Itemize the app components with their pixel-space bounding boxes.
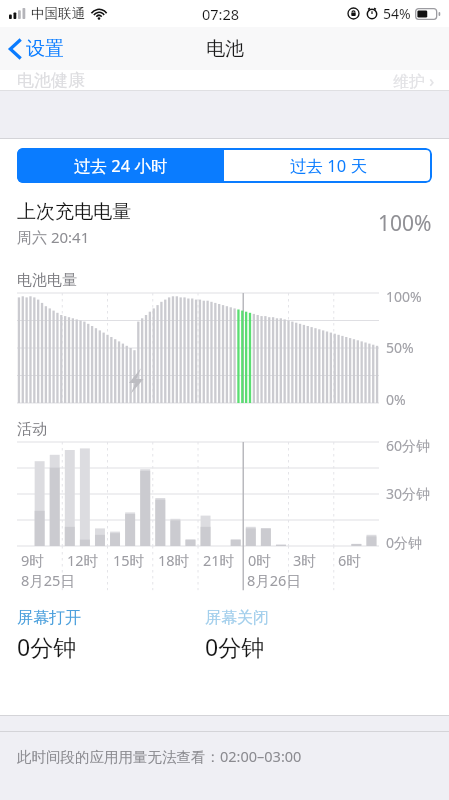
staticText: 0分钟	[17, 631, 77, 662]
staticText: 活动	[17, 420, 47, 439]
staticText: 此时间段的应用用量无法查看：02:00–03:00	[17, 746, 302, 766]
staticText: 屏幕关闭	[205, 608, 269, 628]
staticText: 60分钟	[386, 436, 431, 455]
staticText: 电池电量	[17, 271, 77, 290]
staticText: 18时	[158, 550, 190, 570]
staticText: 屏幕打开	[17, 608, 81, 628]
staticText: 中国联通	[31, 5, 85, 22]
staticText: 50%	[386, 338, 414, 357]
button[interactable]: 过去 24 小时	[17, 148, 224, 183]
staticText: 15时	[113, 550, 145, 570]
staticText: 100%	[378, 209, 432, 238]
staticText: 30分钟	[386, 484, 431, 503]
staticText: 过去 10 天	[290, 154, 367, 177]
staticText: 0%	[386, 390, 406, 409]
staticText: 设置	[26, 37, 64, 61]
staticText: 9时	[21, 550, 44, 570]
staticText: 21时	[203, 550, 235, 570]
staticText: 电池	[206, 37, 244, 61]
staticText: 0时	[248, 550, 271, 570]
staticText: 07:28	[202, 4, 240, 24]
staticText: 0分钟	[205, 631, 265, 662]
staticText: 维护 ›	[393, 70, 435, 90]
staticText: 3时	[293, 550, 316, 570]
staticText: 8月26日	[247, 570, 301, 590]
staticText: 过去 24 小时	[74, 154, 168, 177]
staticText: 电池健康	[17, 70, 85, 90]
staticText: 周六 20:41	[17, 227, 90, 247]
staticText: 6时	[338, 550, 361, 570]
staticText: 0分钟	[386, 533, 423, 552]
staticText: 8月25日	[21, 570, 75, 590]
staticText: 上次充电电量	[17, 200, 131, 224]
button[interactable]: 上次充电电量	[0, 200, 449, 247]
button[interactable]: 过去 10 天	[224, 148, 432, 183]
button[interactable]: 设置	[0, 32, 76, 66]
staticText: 54%	[383, 4, 411, 23]
staticText: 100%	[386, 287, 422, 306]
staticText: 12时	[67, 550, 99, 570]
